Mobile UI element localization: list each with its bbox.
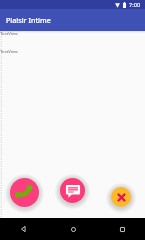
button[interactable]: Call <box>10 178 39 207</box>
staticText: TextView <box>0 30 18 36</box>
staticText: 7:00 <box>129 1 141 9</box>
button[interactable]: Back <box>14 220 32 238</box>
button[interactable]: Message <box>60 178 85 203</box>
staticText: TextView <box>0 48 18 54</box>
staticText: Plaisir Intime <box>6 15 51 25</box>
button[interactable]: Decline <box>111 187 131 207</box>
button[interactable]: Home <box>64 220 82 238</box>
button[interactable]: Recents <box>113 220 131 238</box>
